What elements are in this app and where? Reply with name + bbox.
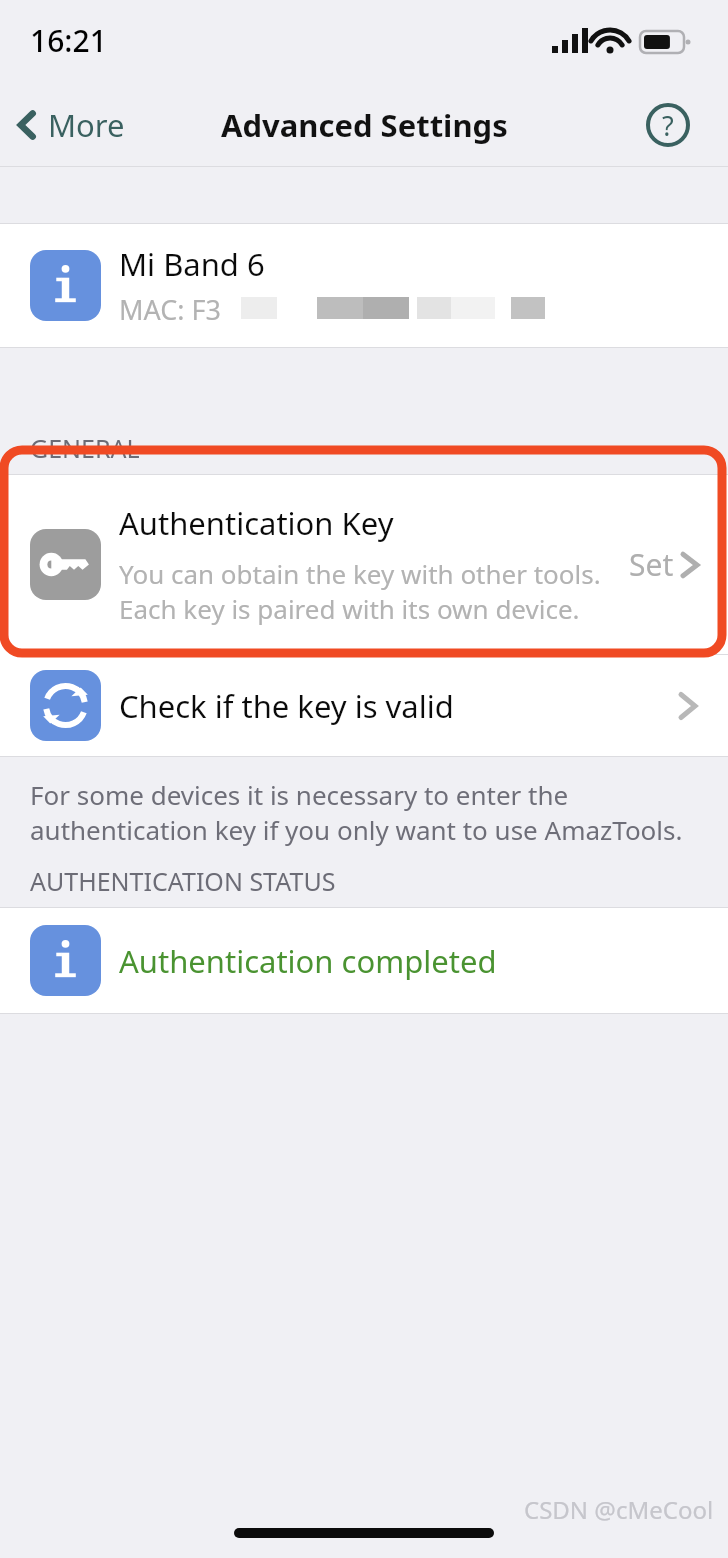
staticText: GENERAL — [30, 431, 140, 465]
staticText: For some devices it is necessary to ente… — [30, 777, 569, 812]
staticText: AUTHENTICATION STATUS — [30, 864, 336, 898]
staticText: Advanced Settings — [221, 104, 508, 146]
staticText: 16:21 — [30, 20, 107, 61]
staticText: More — [48, 104, 125, 146]
staticText: CSDN @cMeCool — [524, 1493, 714, 1526]
button[interactable]: More — [0, 96, 141, 154]
staticText: Authentication completed — [119, 940, 497, 982]
staticText: Mi Band 6 — [119, 243, 265, 285]
button[interactable]: Authentication completed — [0, 908, 728, 1013]
staticText: Set — [629, 544, 674, 585]
staticText: You can obtain the key with other tools. — [119, 556, 601, 591]
button[interactable]: Check if the key is valid — [0, 655, 728, 756]
staticText: authentication key if you only want to u… — [30, 812, 683, 847]
button[interactable]: Help — [644, 101, 692, 149]
button[interactable]: Mi Band 6 — [0, 224, 728, 347]
staticText: Each key is paired with its own device. — [119, 591, 580, 626]
staticText: Check if the key is valid — [119, 685, 678, 727]
staticText: ? — [662, 107, 674, 144]
button[interactable]: Authentication Key — [0, 474, 728, 654]
staticText: Authentication Key — [119, 502, 394, 544]
staticText: MAC: F3 — [119, 291, 221, 328]
